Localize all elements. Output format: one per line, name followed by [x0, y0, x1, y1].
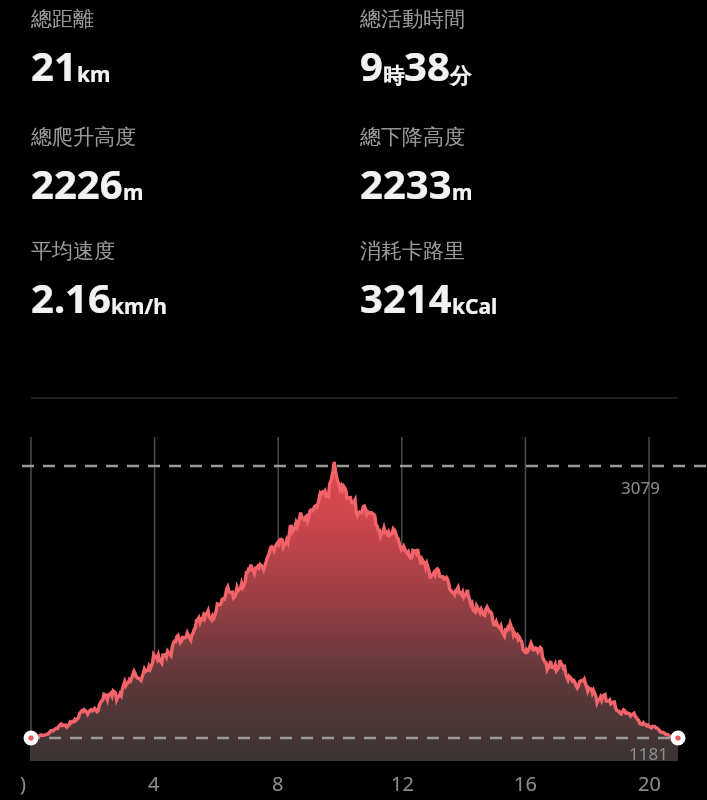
staticText: 16 [514, 770, 537, 797]
staticText: km [77, 60, 111, 89]
staticText: 8 [272, 770, 284, 797]
staticText: 12 [391, 770, 414, 797]
button[interactable]: 總活動時間 [360, 6, 471, 92]
staticText: 2226 [31, 156, 123, 210]
button[interactable]: 平均速度 [31, 238, 360, 324]
staticText: ) [20, 770, 26, 797]
staticText: 38 [404, 38, 450, 92]
staticText: 總下降高度 [360, 124, 465, 150]
button[interactable]: 總爬升高度 [31, 124, 360, 210]
staticText: 消耗卡路里 [360, 238, 465, 264]
button[interactable]: 總距離 [31, 6, 360, 92]
staticText: 總距離 [31, 6, 94, 32]
staticText: 時 [383, 63, 404, 89]
staticText: 3079 [600, 476, 660, 499]
staticText: 1181 [600, 742, 668, 765]
staticText: 總活動時間 [360, 6, 465, 32]
button[interactable]: 消耗卡路里 [360, 238, 498, 324]
staticText: 20 [638, 770, 661, 797]
staticText: 9 [360, 38, 383, 92]
staticText: 分 [450, 63, 471, 89]
staticText: 3214 [360, 270, 452, 324]
staticText: 平均速度 [31, 238, 115, 264]
staticText: 2.16 [31, 270, 111, 324]
staticText: 4 [148, 770, 160, 797]
staticText: kCal [452, 292, 498, 321]
staticText: 21 [31, 38, 77, 92]
staticText: m [452, 178, 473, 207]
other: Elevation profile chart [0, 0, 707, 800]
button[interactable]: 總下降高度 [360, 124, 473, 210]
staticText: m [123, 178, 144, 207]
staticText: 2233 [360, 156, 452, 210]
staticText: km/h [111, 292, 167, 321]
staticText: 總爬升高度 [31, 124, 136, 150]
